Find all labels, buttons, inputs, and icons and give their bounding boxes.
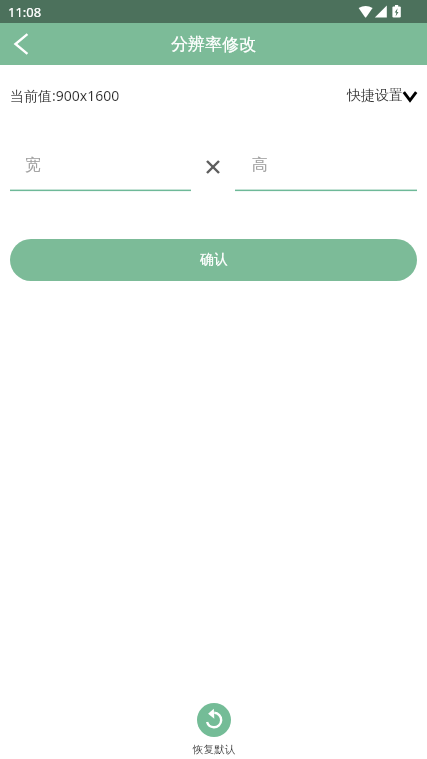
button[interactable]: Back: [0, 23, 42, 65]
staticText: 快捷设置: [347, 87, 403, 105]
button[interactable]: Multiply: [191, 151, 235, 191]
staticText: 11:08: [8, 3, 42, 21]
staticText: 宽: [25, 155, 41, 175]
staticText: 恢复默认: [193, 743, 235, 756]
button[interactable]: 宽: [10, 151, 191, 191]
staticText: 高: [252, 155, 268, 175]
button[interactable]: 确认: [10, 239, 417, 281]
staticText: 确认: [200, 251, 228, 269]
button[interactable]: 快捷设置: [347, 87, 417, 105]
button[interactable]: 高: [235, 151, 417, 191]
staticText: 分辨率修改: [171, 34, 256, 55]
staticText: 当前值:900x1600: [10, 86, 120, 105]
button[interactable]: 恢复默认: [193, 703, 235, 756]
